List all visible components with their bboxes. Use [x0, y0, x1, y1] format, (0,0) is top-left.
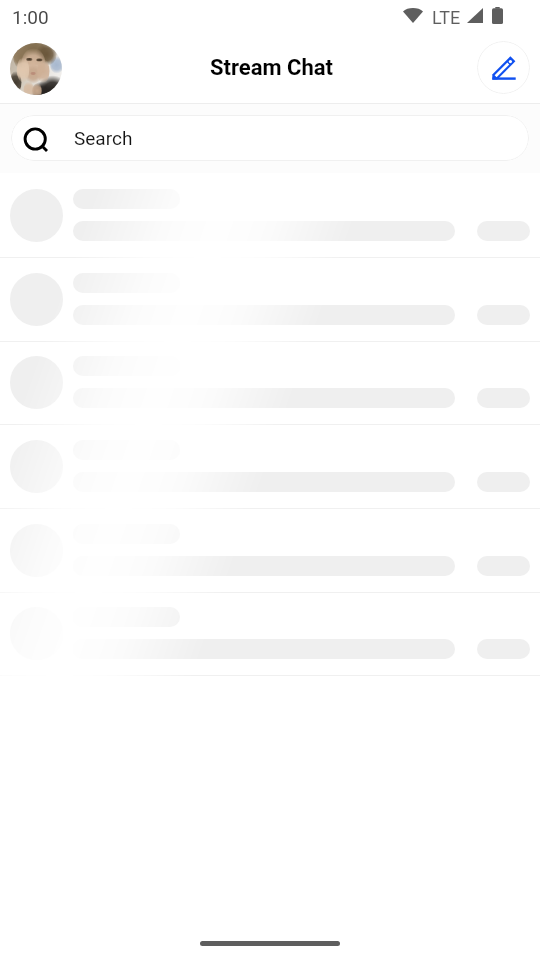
button[interactable]	[0, 341, 540, 425]
button[interactable]	[0, 509, 540, 593]
staticText: Stream Chat	[210, 55, 333, 81]
button[interactable]: New message	[477, 41, 530, 94]
button[interactable]	[0, 592, 540, 676]
button[interactable]	[0, 258, 540, 342]
staticText: 1:00	[12, 6, 49, 28]
button[interactable]	[0, 425, 540, 509]
staticText: LTE	[432, 7, 461, 28]
button[interactable]: Profile	[10, 43, 62, 95]
button[interactable]	[0, 174, 540, 258]
staticText: Search	[74, 127, 133, 149]
button[interactable]: Search	[11, 115, 529, 161]
